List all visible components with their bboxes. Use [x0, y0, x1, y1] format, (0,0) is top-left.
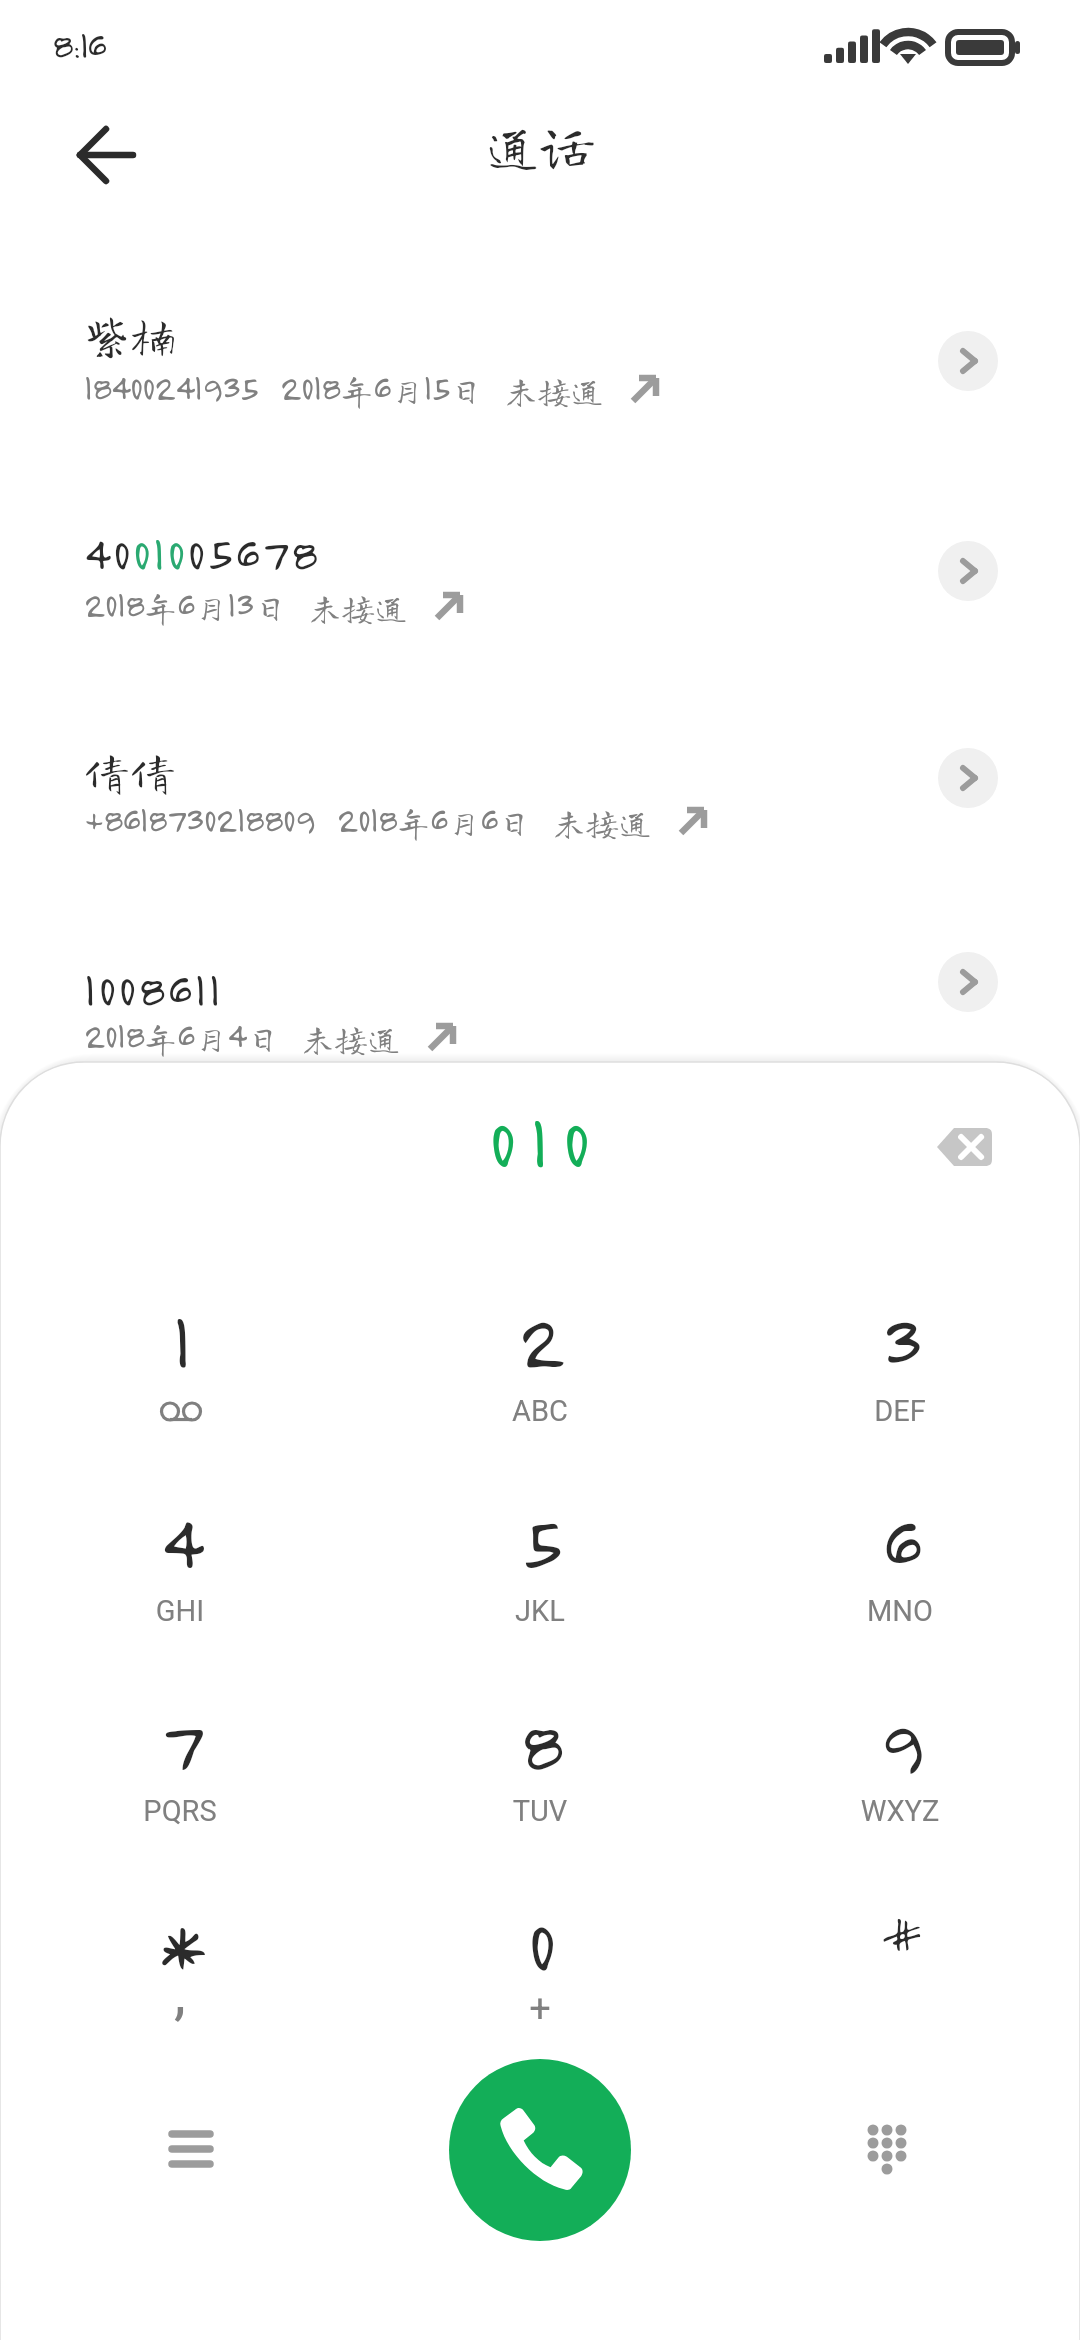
staticText: PQRS — [30, 1794, 330, 1828]
button[interactable]: Back — [60, 110, 150, 200]
button[interactable]: 5 — [390, 1461, 690, 1651]
button[interactable]: Call details — [938, 541, 998, 601]
staticText: 8:16 — [52, 21, 105, 67]
button[interactable]: 9 — [750, 1662, 1050, 1852]
button[interactable]: Call — [449, 2059, 631, 2241]
staticText: 18400241935 2018年6月15日 未接通 — [84, 366, 604, 408]
staticText: 5 — [390, 1495, 690, 1587]
button[interactable]: Call details — [938, 952, 998, 1012]
staticText: JKL — [390, 1594, 690, 1628]
staticText: + — [390, 1987, 690, 2032]
staticText: DEF — [750, 1394, 1050, 1428]
staticText: # — [750, 1903, 1050, 1963]
staticText: 9 — [750, 1696, 1050, 1788]
button[interactable]: 3 — [750, 1260, 1050, 1450]
button[interactable]: Delete — [906, 1100, 1022, 1194]
button[interactable]: 4001005678 — [0, 506, 1080, 706]
staticText: , — [30, 1957, 330, 2027]
staticText: 8 — [390, 1696, 690, 1788]
staticText: 7 — [30, 1696, 330, 1788]
staticText: 紫楠 — [84, 312, 176, 358]
staticText: 4 — [30, 1495, 330, 1587]
button[interactable]: 倩倩 — [0, 731, 1080, 931]
staticText: 6 — [750, 1495, 1050, 1587]
other: Voicemail — [161, 1403, 201, 1423]
staticText: GHI — [30, 1594, 330, 1628]
button[interactable]: 4 — [30, 1461, 330, 1651]
button[interactable]: # — [750, 1863, 1050, 2053]
staticText: MNO — [750, 1594, 1050, 1628]
staticText: ABC — [390, 1394, 690, 1428]
button[interactable]: 2 — [390, 1260, 690, 1450]
button[interactable]: 紫楠 — [0, 294, 1080, 494]
staticText: 通话 — [486, 118, 594, 172]
staticText: * — [30, 1897, 330, 1989]
button[interactable]: 7 — [30, 1662, 330, 1852]
button[interactable]: * — [30, 1863, 330, 2053]
staticText: 1008611 — [84, 960, 224, 1017]
staticText: 2 — [390, 1294, 690, 1386]
staticText: 倩倩 — [84, 749, 176, 795]
button[interactable]: Call log — [136, 2094, 246, 2204]
staticText: 3 — [750, 1294, 1050, 1386]
button[interactable]: 1008611 — [0, 942, 1080, 1142]
staticText: 1 — [30, 1294, 330, 1386]
staticText: 4001005678 — [84, 524, 320, 581]
button[interactable]: Call details — [938, 748, 998, 808]
staticText: +8618730218809 2018年6月6日 未接通 — [84, 798, 652, 840]
staticText: TUV — [390, 1794, 690, 1828]
button[interactable]: 8 — [390, 1662, 690, 1852]
staticText: 2018年6月13日 未接通 — [84, 583, 408, 625]
button[interactable]: 1 — [30, 1260, 330, 1450]
staticText: 010 — [489, 1097, 604, 1185]
button[interactable]: 0 — [390, 1863, 690, 2053]
button[interactable]: 6 — [750, 1461, 1050, 1651]
staticText: WXYZ — [750, 1794, 1050, 1828]
staticText: 2018年6月4日 未接通 — [84, 1014, 401, 1056]
button[interactable]: Hide dialpad — [833, 2094, 943, 2204]
button[interactable]: Call details — [938, 331, 998, 391]
staticText: 0 — [390, 1897, 690, 1989]
